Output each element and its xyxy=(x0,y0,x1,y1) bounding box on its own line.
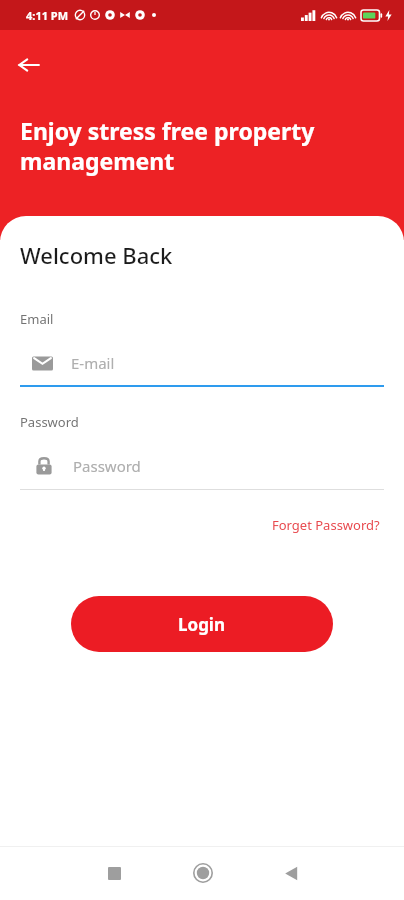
staticText: Password xyxy=(73,456,141,476)
staticText: E-mail xyxy=(71,353,115,373)
button[interactable]: E-mail xyxy=(20,346,384,380)
button[interactable]: Home xyxy=(184,854,222,892)
staticText: Enjoy stress free property management xyxy=(20,115,315,176)
staticText: Forget Password? xyxy=(272,516,380,534)
button[interactable]: Back xyxy=(10,46,48,84)
staticText: Welcome Back xyxy=(20,240,173,270)
staticText: 4:11 PM xyxy=(26,8,69,23)
button[interactable]: Forget Password? xyxy=(268,512,384,538)
button[interactable]: Back xyxy=(272,854,310,892)
button[interactable]: Recents xyxy=(95,854,133,892)
staticText: Login xyxy=(178,613,226,636)
button[interactable]: Login xyxy=(71,596,333,652)
staticText: Password xyxy=(20,413,79,431)
button[interactable]: Password xyxy=(20,449,384,483)
staticText: Email xyxy=(20,310,54,328)
